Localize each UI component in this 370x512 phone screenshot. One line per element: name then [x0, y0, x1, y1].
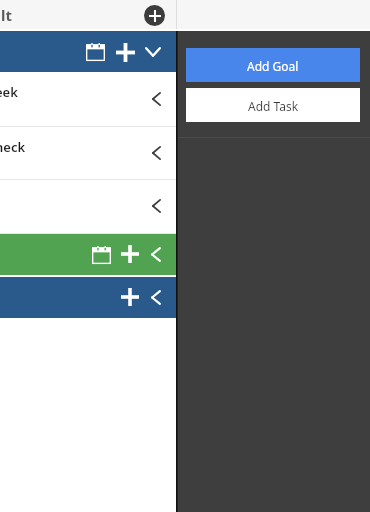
button[interactable]: eek: [0, 72, 176, 126]
button[interactable]: Add Task: [186, 88, 360, 122]
button[interactable]: Add: [118, 285, 142, 309]
button[interactable]: Calendar: [0, 31, 176, 72]
button[interactable]: Add: [144, 5, 165, 26]
button[interactable]: Expand: [144, 141, 168, 165]
button[interactable]: Collapse: [141, 40, 165, 64]
button[interactable]: Calendar: [0, 234, 176, 275]
button[interactable]: Add: [113, 40, 137, 64]
button[interactable]: Calendar: [89, 243, 113, 267]
button[interactable]: Expand: [144, 285, 168, 309]
button[interactable]: Add: [118, 242, 142, 266]
button[interactable]: Add Goal: [186, 48, 360, 82]
button[interactable]: Calendar: [83, 40, 107, 64]
staticText: Add Task: [248, 98, 299, 114]
staticText: lt: [1, 5, 12, 25]
staticText: heck: [0, 138, 26, 156]
staticText: eek: [0, 83, 18, 101]
button[interactable]: Expand: [144, 87, 168, 111]
button[interactable]: Expand: [0, 180, 176, 233]
staticText: Add Goal: [247, 58, 299, 74]
button[interactable]: heck: [0, 127, 176, 179]
button[interactable]: Expand: [144, 194, 168, 218]
button[interactable]: Expand: [144, 242, 168, 266]
button[interactable]: Add: [0, 277, 176, 318]
